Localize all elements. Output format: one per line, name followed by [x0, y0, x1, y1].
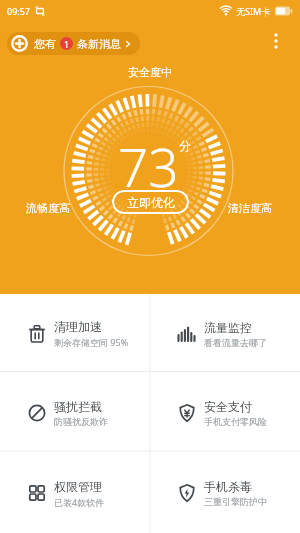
button[interactable]: 您有 — [7, 32, 140, 55]
staticText: 看看流量去哪了 — [204, 337, 267, 348]
staticText: 防骚扰反欺诈 — [54, 416, 108, 427]
button[interactable]: 安全支付 — [150, 373, 300, 453]
staticText: 权限管理 — [54, 479, 102, 494]
staticText: 分 — [179, 138, 191, 153]
staticText: 流量监控 — [204, 320, 252, 335]
staticText: 手机杀毒 — [204, 479, 252, 494]
button[interactable] — [266, 31, 286, 51]
button[interactable]: 流量监控 — [150, 294, 300, 373]
button[interactable]: 骚扰拦截 — [0, 373, 150, 453]
staticText: 骚扰拦截 — [54, 399, 102, 414]
button[interactable]: 手机杀毒 — [150, 453, 300, 533]
staticText: 三重引擎防护中 — [204, 496, 267, 507]
staticText: 清理加速 — [54, 319, 102, 334]
staticText: 条新消息 — [77, 37, 121, 51]
staticText: 已装4款软件 — [54, 496, 105, 508]
staticText: 73 — [118, 130, 179, 202]
button[interactable]: 清理加速 — [0, 294, 150, 373]
staticText: 安全度中 — [128, 65, 172, 79]
staticText: 立即优化 — [127, 195, 175, 210]
staticText: 清洁度高 — [228, 201, 272, 215]
button[interactable]: 权限管理 — [0, 453, 150, 533]
staticText: 无SIM卡 — [236, 5, 271, 17]
staticText: 1 — [64, 38, 70, 50]
staticText: 流畅度高 — [26, 201, 70, 215]
staticText: 安全支付 — [204, 399, 252, 414]
staticText: 您有 — [34, 37, 56, 51]
button[interactable]: 立即优化 — [112, 190, 189, 214]
staticText: 09:57 — [7, 5, 31, 17]
staticText: 剩余存储空间 95% — [54, 336, 129, 348]
staticText: 手机支付零风险 — [204, 416, 267, 427]
